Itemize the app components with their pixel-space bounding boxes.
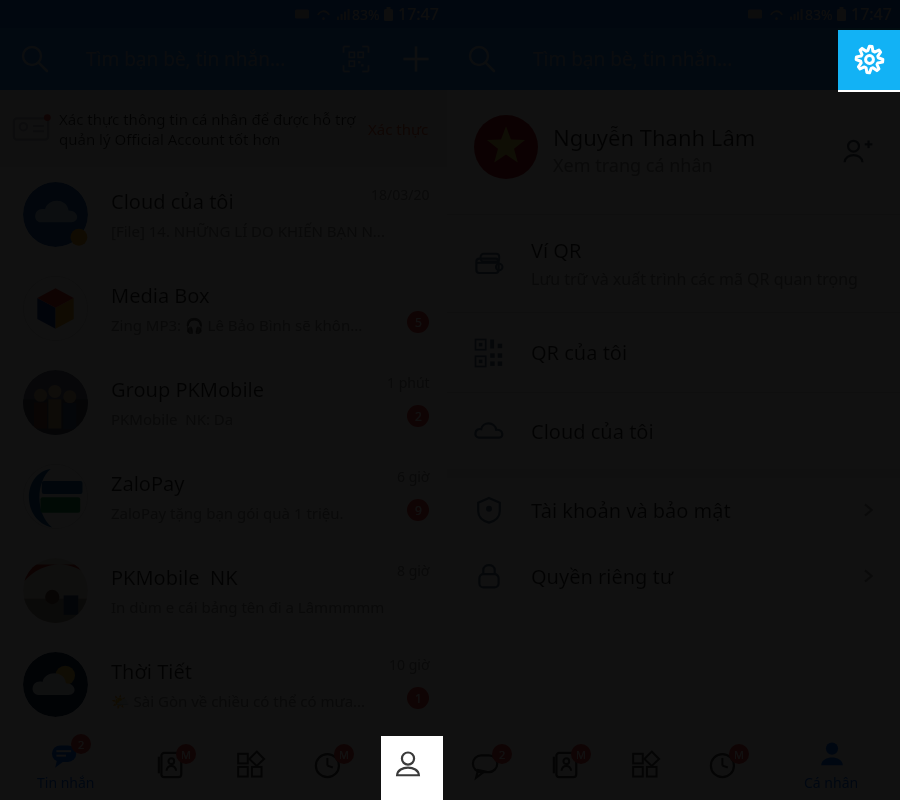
staticText: M	[181, 747, 191, 762]
button[interactable]: Add friend	[838, 132, 878, 172]
button[interactable]: Danh bạ	[131, 730, 210, 800]
button[interactable]: Nguyễn Thanh Lâm	[447, 90, 900, 214]
button[interactable]: ZaloPay	[0, 449, 447, 543]
staticText: M	[734, 747, 744, 762]
staticText: Cloud của tôi	[531, 418, 654, 445]
staticText: Tài khoản và bảo mật	[531, 497, 731, 524]
staticText: 2	[415, 408, 422, 424]
staticText: Xác thực	[368, 119, 429, 139]
staticText: ZaloPay	[111, 470, 185, 497]
button[interactable]: Tin nhắn	[0, 730, 131, 800]
staticText: Thời Tiết	[111, 658, 192, 685]
button[interactable]: Cloud của tôi	[0, 167, 447, 261]
button[interactable]: Tin nhắn	[447, 730, 526, 800]
staticText: Quyền riêng tư	[531, 563, 674, 590]
button[interactable]: Group PKMobile	[0, 355, 447, 449]
button[interactable]: Add	[399, 42, 433, 76]
staticText: 2	[499, 747, 506, 762]
staticText: 83%	[805, 5, 833, 24]
staticText: quản lý Official Account tốt hơn	[59, 129, 281, 149]
staticText: 2	[78, 737, 85, 752]
staticText: 1	[415, 690, 422, 706]
staticText: M	[576, 747, 586, 762]
staticText: 17:47	[851, 3, 892, 25]
staticText: Cloud của tôi	[111, 188, 234, 215]
staticText: QR của tôi	[531, 339, 628, 366]
staticText: Cá nhân	[804, 773, 859, 792]
staticText: 5	[415, 314, 422, 330]
button[interactable]: Settings	[838, 28, 900, 90]
staticText: Ví QR	[531, 237, 582, 264]
staticText: M	[339, 747, 349, 762]
staticText: 17:47	[398, 3, 439, 25]
staticText: Group PKMobile	[111, 376, 264, 403]
button[interactable]: Scan QR	[339, 42, 373, 76]
button[interactable]: Danh bạ	[526, 730, 605, 800]
staticText: PKMobile NK	[111, 564, 238, 591]
staticText: Media Box	[111, 282, 210, 309]
button[interactable]: Nhật ký	[684, 730, 763, 800]
staticText: Nguyễn Thanh Lâm	[553, 122, 756, 152]
button[interactable]: Cá nhân	[368, 730, 447, 800]
staticText: Xác thực thông tin cá nhân để được hỗ tr…	[59, 109, 356, 129]
staticText: 9	[415, 502, 422, 518]
button[interactable]: Thời Tiết	[0, 637, 447, 731]
staticText: Tin nhắn	[37, 773, 95, 792]
staticText: 83%	[352, 5, 380, 24]
button[interactable]: Cá nhân	[763, 730, 900, 800]
button[interactable]: Nhật ký	[289, 730, 368, 800]
